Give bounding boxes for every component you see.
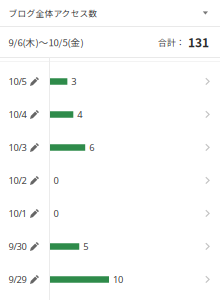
staticText: 9/29: [8, 273, 26, 286]
staticText: 3: [71, 75, 76, 88]
staticText: 10/3: [8, 141, 26, 154]
button[interactable]: 10/4: [0, 98, 220, 131]
staticText: 0: [53, 174, 58, 187]
staticText: 10: [113, 273, 123, 286]
staticText: 9/30: [8, 240, 26, 253]
staticText: 10/5: [8, 75, 26, 88]
staticText: 6: [89, 141, 94, 154]
button[interactable]: 10/2: [0, 164, 220, 197]
staticText: 10/4: [8, 108, 26, 121]
staticText: 5: [83, 240, 88, 253]
staticText: 9/6(木)〜10/5(金): [8, 35, 83, 49]
staticText: 131: [188, 33, 209, 51]
button[interactable]: 10/1: [0, 197, 220, 230]
staticText: 4: [77, 108, 82, 121]
staticText: ブログ全体アクセス数: [8, 7, 97, 19]
staticText: 合計：: [158, 36, 185, 48]
button[interactable]: ブログ全体アクセス数: [0, 0, 220, 26]
staticText: 10/2: [8, 174, 26, 187]
button[interactable]: 10/5: [0, 65, 220, 98]
staticText: 0: [53, 207, 58, 220]
staticText: 10/1: [8, 207, 26, 220]
button[interactable]: 9/29: [0, 263, 220, 296]
button[interactable]: 10/3: [0, 131, 220, 164]
button[interactable]: 9/30: [0, 230, 220, 263]
